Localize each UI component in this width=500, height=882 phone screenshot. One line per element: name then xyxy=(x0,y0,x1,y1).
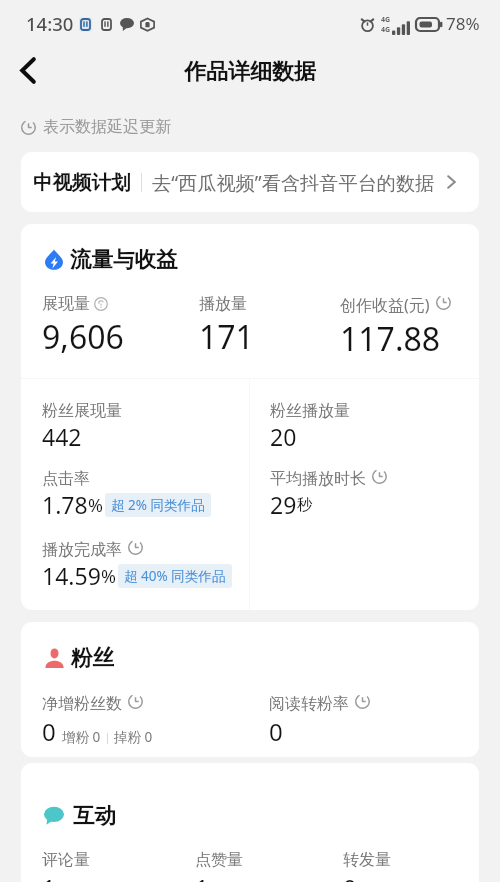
staticText: 净增粉丝数 xyxy=(42,694,122,714)
staticText: 粉丝 xyxy=(71,644,114,671)
staticText: % xyxy=(101,564,116,589)
button[interactable]: 中视频计划 xyxy=(21,152,479,212)
staticText: 粉丝展现量 xyxy=(42,401,122,421)
button[interactable]: Back xyxy=(6,48,50,92)
staticText: 20 xyxy=(270,421,297,452)
staticText: 流量与收益 xyxy=(70,246,178,273)
staticText: % xyxy=(88,493,103,518)
staticText: 171 xyxy=(199,315,254,359)
staticText: 1 xyxy=(42,871,56,882)
staticText: 点击率 xyxy=(42,469,90,489)
staticText: 4G xyxy=(381,25,391,35)
staticText: 粉丝播放量 xyxy=(270,401,350,421)
staticText: 14:30 xyxy=(26,11,74,36)
staticText: 创作收益(元) xyxy=(340,294,430,316)
staticText: 0 xyxy=(343,871,357,882)
staticText: 442 xyxy=(42,421,82,452)
staticText: 平均播放时长 xyxy=(270,469,366,489)
staticText: 14.59 xyxy=(42,560,101,591)
staticText: 超 40% 同类作品 xyxy=(124,567,226,585)
staticText: 1 xyxy=(195,871,209,882)
staticText: 9,606 xyxy=(42,315,124,359)
staticText: 去“西瓜视频”看含抖音平台的数据 xyxy=(152,169,435,195)
staticText: 转发量 xyxy=(343,850,391,870)
staticText: 1.78 xyxy=(42,489,88,520)
staticText: 4G xyxy=(381,15,391,25)
staticText: 播放完成率 xyxy=(42,540,122,560)
staticText: 互动 xyxy=(73,802,116,829)
staticText: 78% xyxy=(446,12,480,35)
staticText: 播放量 xyxy=(199,294,247,314)
staticText: 作品详细数据 xyxy=(184,58,316,86)
staticText: 0 xyxy=(269,715,283,748)
staticText: 秒 xyxy=(297,495,313,515)
staticText: 增粉 0 xyxy=(62,728,101,746)
staticText: 117.88 xyxy=(340,317,441,361)
staticText: 29 xyxy=(270,489,297,520)
staticText: 0 xyxy=(42,715,56,748)
staticText: 超 2% 同类作品 xyxy=(111,496,205,514)
staticText: 点赞量 xyxy=(195,850,243,870)
staticText: 掉粉 0 xyxy=(114,728,153,746)
staticText: 表示数据延迟更新 xyxy=(43,117,171,137)
staticText: 评论量 xyxy=(42,850,90,870)
staticText: 中视频计划 xyxy=(33,170,131,195)
staticText: 展现量 xyxy=(42,294,90,314)
staticText: 阅读转粉率 xyxy=(269,694,349,714)
